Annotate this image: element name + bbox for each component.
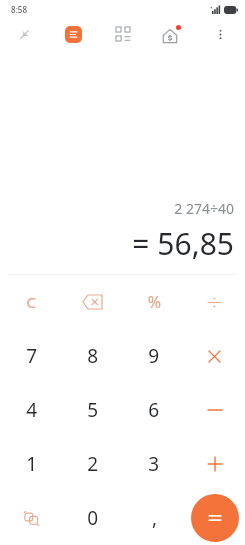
button[interactable]: 2 — [62, 437, 123, 491]
button[interactable]: Multiply — [184, 329, 245, 383]
button[interactable]: 7 — [0, 329, 62, 383]
staticText: 5 — [87, 397, 98, 423]
staticText: 3 — [148, 451, 159, 477]
staticText: 6 — [148, 397, 159, 423]
staticText: % — [147, 291, 161, 313]
button[interactable]: Equals — [191, 494, 239, 542]
button[interactable]: 9 — [123, 329, 184, 383]
button[interactable]: Divide — [184, 275, 245, 329]
staticText: 8 — [87, 343, 98, 369]
button[interactable]: Loan calculator — [147, 18, 196, 50]
staticText: 2 — [87, 451, 98, 477]
button[interactable]: 5 — [62, 383, 123, 437]
staticText: , — [151, 505, 157, 531]
staticText: 9 — [148, 343, 159, 369]
staticText: 2 274÷40 — [174, 199, 234, 218]
button[interactable]: C — [0, 275, 62, 329]
staticText: C — [26, 292, 36, 312]
button[interactable]: 1 — [0, 437, 62, 491]
button[interactable]: Floating window — [0, 491, 62, 545]
button[interactable]: Collapse — [0, 18, 49, 50]
button[interactable]: 6 — [123, 383, 184, 437]
button[interactable]: Converters — [98, 18, 147, 50]
button[interactable]: Calculator — [49, 18, 98, 50]
button[interactable]: Backspace — [62, 275, 123, 329]
button[interactable]: , — [123, 491, 184, 545]
button[interactable]: 0 — [62, 491, 123, 545]
button[interactable]: Minus — [184, 383, 245, 437]
button[interactable]: 4 — [0, 383, 62, 437]
staticText: 0 — [87, 505, 98, 531]
staticText: 4 — [26, 397, 37, 423]
staticText: 7 — [26, 343, 37, 369]
staticText: 8:58 — [11, 4, 27, 15]
button[interactable]: Plus — [184, 437, 245, 491]
button[interactable]: 3 — [123, 437, 184, 491]
staticText: = 56,85 — [132, 223, 234, 264]
button[interactable]: 8 — [62, 329, 123, 383]
button[interactable]: % — [123, 275, 184, 329]
staticText: 1 — [26, 451, 37, 477]
button[interactable]: More options — [196, 18, 245, 50]
